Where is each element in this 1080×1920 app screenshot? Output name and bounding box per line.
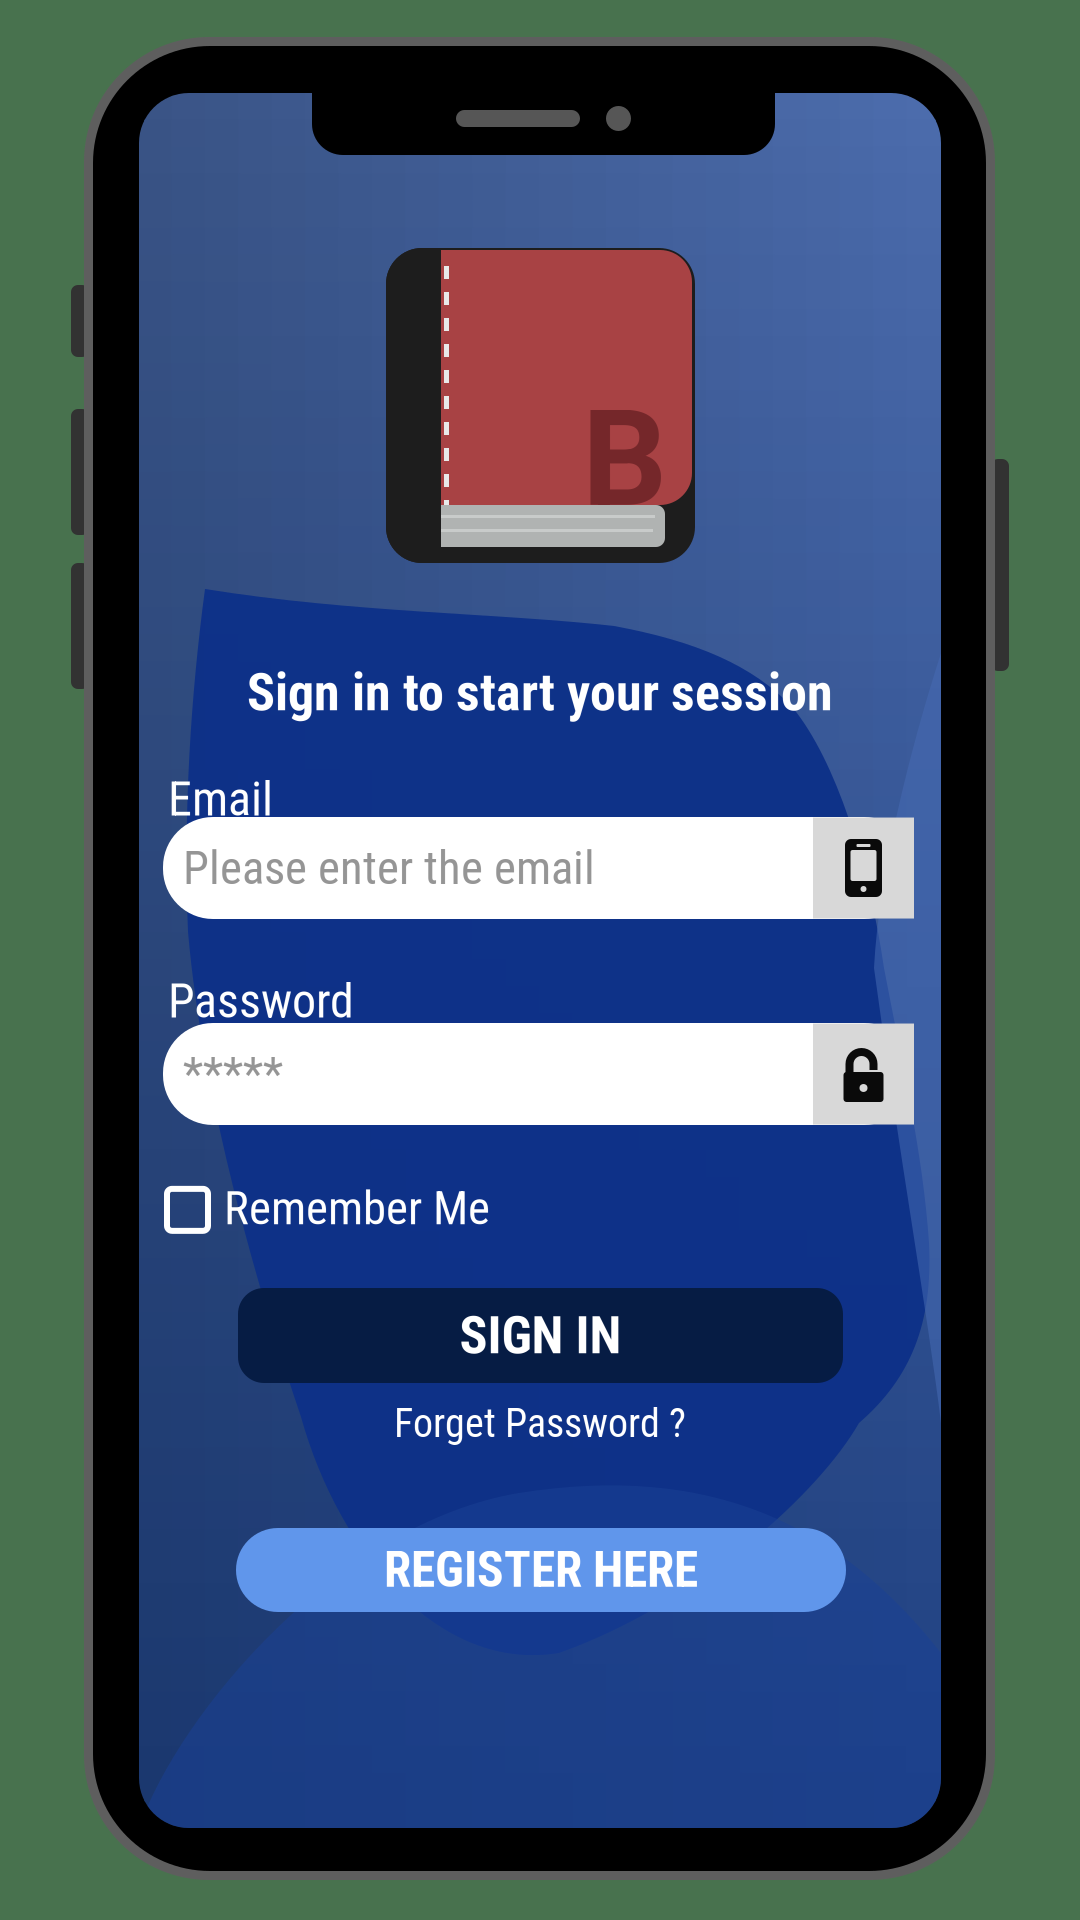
- staticText: REGISTER HERE: [384, 1541, 698, 1599]
- staticText: Email: [168, 771, 273, 827]
- staticText: Sign in to start your session: [247, 662, 833, 723]
- button[interactable]: Remember Me: [167, 1181, 490, 1239]
- button[interactable]: SIGN IN: [238, 1288, 843, 1383]
- staticText: Forget Password ?: [394, 1400, 686, 1447]
- staticText: SIGN IN: [459, 1305, 621, 1366]
- staticText: Password: [168, 973, 354, 1029]
- button[interactable]: REGISTER HERE: [236, 1528, 846, 1612]
- staticText: Remember Me: [224, 1181, 490, 1236]
- staticText: *****: [183, 1047, 283, 1101]
- button[interactable]: Forget Password ?: [139, 1400, 941, 1447]
- staticText: B: [582, 381, 667, 537]
- staticText: Please enter the email: [183, 841, 595, 895]
